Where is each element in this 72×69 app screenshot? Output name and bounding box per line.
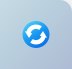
button[interactable]: Sync <box>22 20 50 48</box>
